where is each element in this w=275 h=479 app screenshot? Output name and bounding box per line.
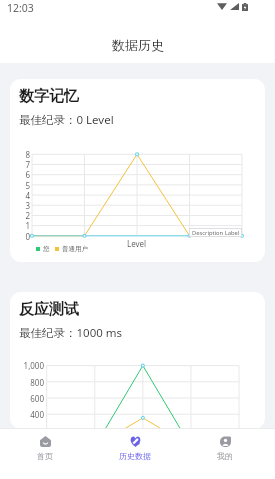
staticText: 0: [25, 231, 30, 242]
staticText: 数据历史: [112, 37, 164, 53]
staticText: 8: [25, 149, 30, 160]
button[interactable]: 历史数据: [90, 429, 180, 461]
staticText: 普通用户: [62, 245, 88, 253]
staticText: 7: [25, 159, 30, 170]
button[interactable]: 我的: [180, 429, 270, 461]
staticText: 3: [25, 200, 30, 211]
staticText: 2: [25, 210, 30, 221]
staticText: 最佳纪录：1000 ms: [19, 325, 123, 341]
button[interactable]: 反应测试: [10, 292, 265, 429]
staticText: 4: [25, 190, 30, 201]
staticText: 首页: [37, 451, 53, 461]
staticText: 最佳纪录：0 Level: [19, 112, 114, 128]
staticText: 我的: [217, 451, 233, 461]
button[interactable]: 首页: [0, 429, 90, 461]
staticText: 400: [30, 409, 44, 420]
staticText: 1,000: [23, 360, 44, 371]
button[interactable]: 数字记忆: [10, 79, 265, 262]
staticText: 历史数据: [119, 451, 151, 461]
staticText: 您: [43, 245, 50, 253]
staticText: 6: [25, 169, 30, 180]
staticText: 5: [25, 180, 30, 191]
staticText: 反应测试: [19, 300, 79, 319]
staticText: 1: [25, 220, 30, 231]
staticText: Description Label: [192, 229, 240, 237]
staticText: 600: [30, 393, 44, 404]
staticText: 数字记忆: [19, 87, 79, 106]
staticText: 800: [30, 377, 44, 388]
staticText: 12:03: [7, 1, 34, 15]
staticText: Level: [127, 238, 147, 249]
